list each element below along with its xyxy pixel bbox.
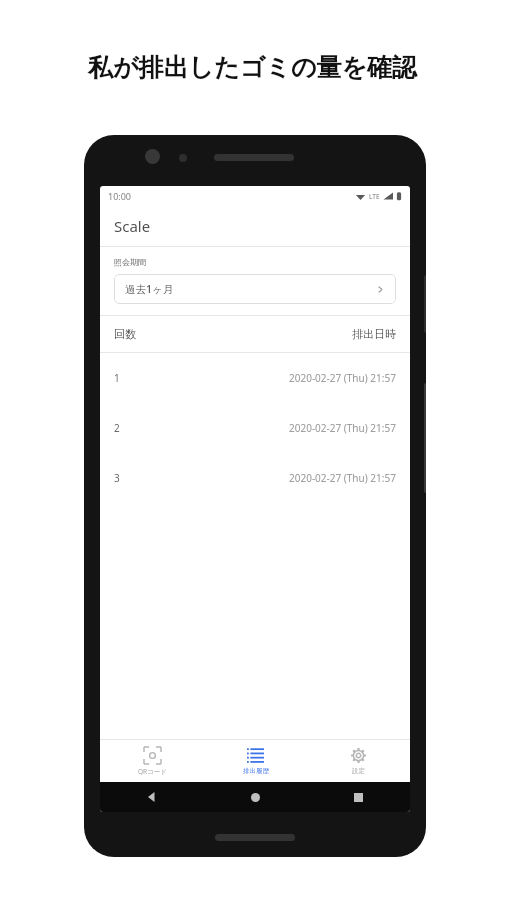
button[interactable]: Home <box>204 782 307 812</box>
staticText: 2 <box>114 421 120 435</box>
button[interactable]: 3 <box>100 453 410 503</box>
staticText: 2020-02-27 (Thu) 21:57 <box>289 371 396 385</box>
button[interactable]: Back <box>100 782 204 812</box>
staticText: 回数 <box>114 327 136 341</box>
staticText: Scale <box>114 216 151 236</box>
staticText: 排出日時 <box>352 327 396 341</box>
staticText: 10:00 <box>108 190 132 202</box>
button[interactable]: QRコード <box>100 740 204 782</box>
staticText: 過去1ヶ月 <box>125 282 174 296</box>
staticText: 排出履歴 <box>243 767 269 775</box>
staticText: 2020-02-27 (Thu) 21:57 <box>289 471 396 485</box>
button[interactable]: 2 <box>100 403 410 453</box>
button[interactable]: 1 <box>100 353 410 403</box>
staticText: 設定 <box>352 767 365 775</box>
staticText: 照会期間 <box>114 257 146 267</box>
staticText: LTE <box>369 192 380 201</box>
button[interactable]: Recents <box>307 782 410 812</box>
staticText: 1 <box>114 371 120 385</box>
staticText: 3 <box>114 471 120 485</box>
staticText: QRコード <box>138 767 167 776</box>
button[interactable]: 設定 <box>307 740 410 782</box>
staticText: 私が排出したゴミの量を確認 <box>88 52 418 83</box>
button[interactable]: 排出履歴 <box>204 740 307 782</box>
button[interactable]: 過去1ヶ月 <box>114 274 396 304</box>
staticText: 2020-02-27 (Thu) 21:57 <box>289 421 396 435</box>
